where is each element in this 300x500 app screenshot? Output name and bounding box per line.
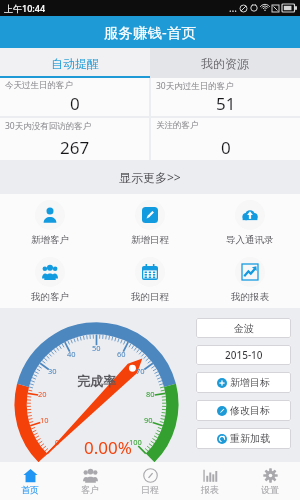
staticText: 客户 <box>81 484 99 495</box>
staticText: 重新加载 <box>230 432 270 445</box>
staticText: 修改目标 <box>230 404 270 417</box>
staticText: 日程 <box>141 484 159 495</box>
button[interactable]: 关注的客户 <box>151 118 300 160</box>
staticText: 上午10:44 <box>4 2 46 14</box>
button[interactable]: 我的客户 <box>0 251 100 308</box>
staticText: 51 <box>216 92 236 115</box>
staticText: 30天内过生日的客户 <box>156 80 234 92</box>
staticText: 显示更多>> <box>119 169 181 185</box>
staticText: 服务赚钱-首页 <box>104 22 196 42</box>
staticText: 报表 <box>201 484 219 495</box>
button[interactable]: 金波 <box>196 318 291 338</box>
staticText: 80 <box>146 389 155 399</box>
button[interactable]: 显示更多>> <box>0 160 300 194</box>
staticText: 新增客户 <box>31 234 69 246</box>
staticText: 设置 <box>261 484 279 495</box>
button[interactable]: 首页 <box>0 462 60 500</box>
staticText: 新增日程 <box>131 234 169 246</box>
button[interactable]: 新增日程 <box>100 194 200 251</box>
staticText: 我的客户 <box>31 291 69 303</box>
button[interactable]: 日程 <box>120 462 180 500</box>
button[interactable]: 新增目标 <box>196 372 291 393</box>
staticText: 20 <box>38 389 47 399</box>
staticText: 30 <box>48 366 57 376</box>
staticText: 我的资源 <box>201 56 249 71</box>
staticText: 50 <box>92 343 101 353</box>
button[interactable]: 今天过生日的客户 <box>0 78 149 116</box>
staticText: 导入通讯录 <box>226 234 274 246</box>
button[interactable]: 30天内过生日的客户 <box>151 78 300 116</box>
button[interactable]: 我的报表 <box>200 251 300 308</box>
button[interactable]: 30天内没有回访的客户 <box>0 118 149 160</box>
button[interactable]: 2015-10 <box>196 345 291 365</box>
staticText: 30天内没有回访的客户 <box>5 120 92 132</box>
staticText: 2015-10 <box>225 348 263 362</box>
button[interactable]: 我的资源 <box>150 48 300 78</box>
staticText: 新增目标 <box>230 376 270 389</box>
button[interactable]: 自动提醒 <box>0 48 150 78</box>
button[interactable]: 我的日程 <box>100 251 200 308</box>
button[interactable]: 新增客户 <box>0 194 100 251</box>
staticText: 267 <box>60 136 90 159</box>
staticText: 10 <box>40 415 49 425</box>
button[interactable]: 修改目标 <box>196 400 291 421</box>
staticText: 自动提醒 <box>51 56 99 71</box>
staticText: 0 <box>55 437 60 447</box>
staticText: 100 <box>129 437 142 447</box>
button[interactable]: 重新加载 <box>196 428 291 449</box>
staticText: 0.00% <box>84 436 132 459</box>
staticText: … <box>229 1 237 15</box>
staticText: 0 <box>70 92 80 115</box>
staticText: 40 <box>67 349 76 359</box>
staticText: 今天过生日的客户 <box>5 80 73 91</box>
staticText: 我的报表 <box>231 291 269 303</box>
staticText: 完成率 <box>77 373 116 389</box>
button[interactable]: 报表 <box>180 462 240 500</box>
staticText: 首页 <box>21 484 39 495</box>
staticText: 70 <box>136 366 145 376</box>
button[interactable]: 设置 <box>240 462 300 500</box>
staticText: 90 <box>144 415 153 425</box>
staticText: 金波 <box>234 322 254 335</box>
staticText: 60 <box>117 349 126 359</box>
staticText: 我的日程 <box>131 291 169 303</box>
button[interactable]: 客户 <box>60 462 120 500</box>
button[interactable]: 导入通讯录 <box>200 194 300 251</box>
staticText: 关注的客户 <box>156 120 199 131</box>
staticText: 0 <box>221 136 231 159</box>
